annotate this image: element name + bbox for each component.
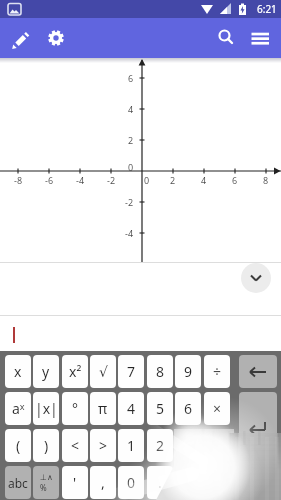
button[interactable]: 9 <box>175 355 201 388</box>
staticText: √ <box>99 364 108 380</box>
staticText: 5 <box>156 399 165 418</box>
button[interactable]: 2 <box>147 429 173 462</box>
staticText: 0 <box>144 174 150 186</box>
staticText: ' <box>73 473 77 492</box>
staticText: -4 <box>76 174 85 186</box>
button[interactable]: 7 <box>118 355 144 388</box>
button[interactable]: ÷ <box>204 355 230 388</box>
button[interactable]: x² <box>62 355 88 388</box>
staticText: aˣ <box>12 399 25 418</box>
staticText: -6 <box>45 174 54 186</box>
button[interactable] <box>241 263 271 293</box>
button[interactable]: . <box>147 466 173 499</box>
staticText: -4 <box>125 227 134 239</box>
button[interactable]: ' <box>62 466 88 499</box>
staticText: 4 <box>127 399 136 418</box>
button[interactable]: 0 <box>118 466 144 499</box>
staticText: ( <box>16 436 21 455</box>
button[interactable]: ) <box>33 429 59 462</box>
staticText: 6 <box>232 174 238 186</box>
staticText: ⊥∧ % <box>40 473 53 493</box>
staticText: 4 <box>128 103 134 115</box>
staticText: abc <box>8 475 28 491</box>
button[interactable]: ⊥∧ % <box>33 466 59 499</box>
staticText: 8 <box>156 362 165 381</box>
button[interactable]: > <box>90 429 116 462</box>
button[interactable] <box>239 355 277 388</box>
button[interactable]: 1 <box>118 429 144 462</box>
staticText: x <box>14 362 22 381</box>
staticText: -2 <box>125 196 134 208</box>
button[interactable]: ° <box>62 392 88 425</box>
staticText: π <box>98 399 108 418</box>
staticText: 2 <box>170 174 176 186</box>
button[interactable]: + <box>204 466 230 499</box>
staticText: 2 <box>128 134 134 146</box>
button[interactable]: x <box>5 355 31 388</box>
staticText: 8 <box>263 174 269 186</box>
button[interactable]: = <box>175 466 201 499</box>
button[interactable] <box>239 392 277 462</box>
staticText: y <box>42 362 50 381</box>
button[interactable]: 6 <box>175 392 201 425</box>
staticText: 6 <box>128 72 134 84</box>
staticText: < <box>71 436 80 455</box>
staticText: |x| <box>35 399 58 418</box>
button[interactable]: √ <box>90 355 116 388</box>
staticText: 0 <box>128 161 134 173</box>
staticText: 2 <box>156 436 165 455</box>
staticText: ° <box>72 399 78 418</box>
staticText: 7 <box>127 362 136 381</box>
staticText: 1 <box>127 436 136 455</box>
button[interactable]: 3 <box>175 429 201 462</box>
staticText: 6 <box>184 399 193 418</box>
staticText: 9 <box>184 362 193 381</box>
button[interactable]: 5 <box>147 392 173 425</box>
button[interactable]: 8 <box>147 355 173 388</box>
button[interactable] <box>214 26 238 50</box>
staticText: 4 <box>201 174 207 186</box>
button[interactable] <box>0 316 281 351</box>
staticText: -8 <box>14 174 23 186</box>
button[interactable]: < <box>62 429 88 462</box>
button[interactable] <box>7 26 31 50</box>
button[interactable]: abc <box>5 466 31 499</box>
staticText: > <box>99 436 108 455</box>
button[interactable]: − <box>204 429 230 462</box>
staticText: . <box>158 473 162 492</box>
staticText: ÷ <box>213 362 222 381</box>
staticText: 6:21 <box>257 2 277 16</box>
button[interactable]: y <box>33 355 59 388</box>
button[interactable]: 4 <box>118 392 144 425</box>
button[interactable]: × <box>204 392 230 425</box>
button[interactable]: π <box>90 392 116 425</box>
staticText: × <box>213 399 222 418</box>
button[interactable]: |x| <box>33 392 59 425</box>
button[interactable] <box>248 26 272 50</box>
staticText: , <box>101 473 105 492</box>
staticText: x² <box>69 362 82 381</box>
button[interactable] <box>44 26 68 50</box>
staticText: 0 <box>127 473 136 492</box>
staticText: -2 <box>107 174 116 186</box>
button[interactable]: ( <box>5 429 31 462</box>
button[interactable]: aˣ <box>5 392 31 425</box>
button[interactable]: , <box>90 466 116 499</box>
staticText: ) <box>44 436 49 455</box>
